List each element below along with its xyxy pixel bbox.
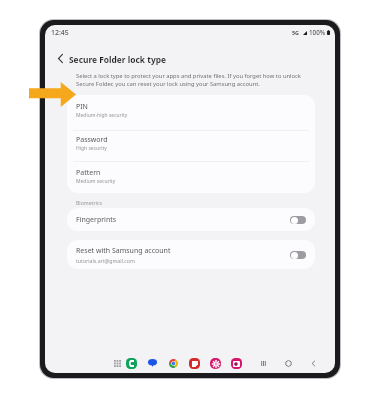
staticText: Pattern: [76, 168, 101, 178]
button[interactable]: Home: [282, 357, 294, 369]
button[interactable]: Messages: [125, 357, 137, 369]
button[interactable]: Instagram: [230, 357, 242, 369]
button[interactable]: Keep Notes: [188, 357, 200, 369]
button[interactable]: PIN: [67, 95, 315, 130]
staticText: Medium security: [76, 178, 116, 185]
button[interactable]: Recent apps: [257, 357, 269, 369]
button[interactable]: All apps: [111, 357, 123, 369]
staticText: 12:45: [51, 28, 69, 37]
button[interactable]: Reset with Samsung account: [67, 240, 315, 269]
staticText: Select a lock type to protect your apps …: [76, 72, 304, 88]
staticText: 100%: [309, 28, 326, 37]
staticText: Reset with Samsung account: [76, 246, 171, 256]
button[interactable]: Password: [67, 130, 315, 161]
button[interactable]: Gallery: [209, 357, 221, 369]
staticText: PIN: [76, 102, 88, 112]
button[interactable]: Navigate up: [52, 49, 69, 67]
button[interactable]: Pattern: [67, 163, 315, 193]
staticText: Medium-high security: [76, 112, 128, 119]
button[interactable]: KakaoTalk: [146, 357, 158, 369]
button[interactable]: Back: [307, 357, 319, 369]
staticText: High security: [76, 145, 107, 152]
staticText: Biometrics: [76, 199, 102, 206]
staticText: Secure Folder lock type: [69, 54, 166, 65]
staticText: Fingerprints: [76, 215, 290, 225]
button[interactable]: Fingerprints: [67, 208, 315, 231]
staticText: 5G: [292, 29, 299, 36]
button[interactable]: Toggle: [290, 251, 306, 259]
button[interactable]: Toggle: [290, 216, 306, 224]
staticText: Password: [76, 135, 108, 145]
button[interactable]: Chrome: [167, 357, 179, 369]
staticText: tutorials.art@gmail.com: [76, 257, 135, 264]
